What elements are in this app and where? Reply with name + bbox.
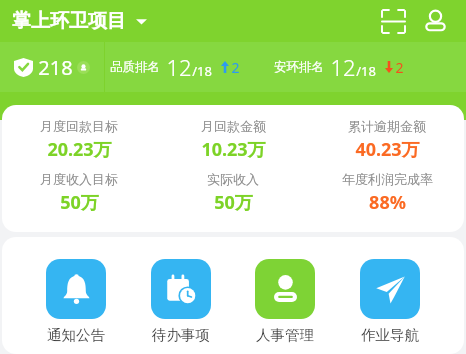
staticText: 月度回款目标 <box>40 118 118 134</box>
staticText: 88% <box>369 190 406 215</box>
staticText: 40.23万 <box>355 137 420 162</box>
staticText: 通知公告 <box>47 326 105 344</box>
staticText: 218 <box>38 54 73 81</box>
staticText: 2 <box>231 58 240 77</box>
staticText: 2 <box>395 58 404 77</box>
staticText: 月回款金额 <box>201 118 266 134</box>
button[interactable]: Scan QR code <box>376 4 410 38</box>
staticText: 实际收入 <box>207 171 259 187</box>
staticText: 50万 <box>214 190 253 215</box>
staticText: 品质排名 <box>110 59 160 75</box>
staticText: 50万 <box>60 190 99 215</box>
staticText: 安环排名 <box>274 59 324 75</box>
button[interactable]: 待办事项 <box>151 259 211 344</box>
staticText: /18 <box>356 62 376 80</box>
staticText: 12 <box>166 52 192 82</box>
button[interactable]: 品质排名 <box>110 52 240 82</box>
staticText: 10.23万 <box>201 137 266 162</box>
staticText: 掌上环卫项目 <box>12 9 126 33</box>
staticText: 12 <box>330 52 356 82</box>
staticText: 作业导航 <box>361 326 419 344</box>
button[interactable]: 218 <box>0 42 104 92</box>
staticText: 月度收入目标 <box>40 171 118 187</box>
button[interactable]: 月度收入目标 <box>2 171 156 215</box>
button[interactable]: 安环排名 <box>274 52 404 82</box>
button[interactable]: 掌上环卫项目 <box>12 9 147 33</box>
button[interactable]: 作业导航 <box>360 259 420 344</box>
staticText: 年度利润完成率 <box>342 171 433 187</box>
button[interactable]: 月回款金额 <box>156 118 310 162</box>
staticText: 累计逾期金额 <box>348 118 426 134</box>
button[interactable]: Profile <box>418 4 452 38</box>
button[interactable]: 实际收入 <box>156 171 310 215</box>
staticText: /18 <box>192 62 212 80</box>
button[interactable]: 月度回款目标 <box>2 118 156 162</box>
button[interactable]: 年度利润完成率 <box>310 171 464 215</box>
staticText: 待办事项 <box>152 326 210 344</box>
button[interactable]: 通知公告 <box>46 259 106 344</box>
staticText: 人事管理 <box>256 326 314 344</box>
staticText: 20.23万 <box>47 137 112 162</box>
button[interactable]: 人事管理 <box>255 259 315 344</box>
button[interactable]: 累计逾期金额 <box>310 118 464 162</box>
